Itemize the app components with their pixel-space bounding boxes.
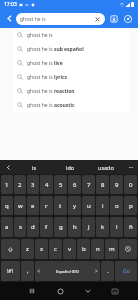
staticText: 17:03 xyxy=(4,1,17,8)
button[interactable]: , xyxy=(21,261,34,281)
button[interactable]: y xyxy=(68,196,81,215)
staticText: i xyxy=(102,202,104,210)
staticText: m xyxy=(109,245,115,253)
staticText: 8 xyxy=(101,181,105,189)
button[interactable]: z xyxy=(21,239,34,259)
button[interactable]: . xyxy=(101,261,114,281)
staticText: ghost he is lyrics xyxy=(27,74,68,81)
staticText: . xyxy=(107,267,109,275)
button[interactable]: t xyxy=(54,196,67,215)
button[interactable]: !#1 xyxy=(1,261,20,281)
button[interactable]: ghost he is lyrics xyxy=(13,70,129,84)
button[interactable]: usado xyxy=(88,160,124,174)
button[interactable]: 6 xyxy=(68,175,81,194)
button[interactable]: 8 xyxy=(96,175,109,194)
staticText: , xyxy=(27,267,29,275)
button[interactable]: Shift xyxy=(1,239,20,259)
staticText: b xyxy=(82,245,86,253)
staticText: p xyxy=(129,202,133,210)
staticText: 1 xyxy=(5,181,9,189)
button[interactable]: 9 xyxy=(110,175,123,194)
button[interactable]: Go xyxy=(115,261,137,281)
staticText: d xyxy=(31,223,35,231)
button[interactable]: n xyxy=(91,239,104,259)
staticText: ghost he is live xyxy=(27,60,63,67)
staticText: w xyxy=(18,202,23,210)
staticText: Español (ES) xyxy=(56,269,79,274)
button[interactable]: Back xyxy=(74,282,102,300)
button[interactable]: f xyxy=(40,217,53,237)
staticText: t xyxy=(59,202,62,210)
staticText: ñ xyxy=(129,223,133,231)
staticText: ghost he is sub español xyxy=(27,46,84,53)
button[interactable]: h xyxy=(68,217,81,237)
button[interactable]: Hide keyboard xyxy=(102,282,127,300)
button[interactable]: is xyxy=(16,160,52,174)
button[interactable]: Back xyxy=(3,12,16,25)
button[interactable]: b xyxy=(77,239,90,259)
staticText: is xyxy=(32,164,37,171)
staticText: k xyxy=(101,223,105,231)
button[interactable]: l xyxy=(110,217,123,237)
button[interactable]: 1 xyxy=(1,175,13,194)
button[interactable]: c xyxy=(49,239,62,259)
staticText: n xyxy=(96,245,100,253)
staticText: ghost he is xyxy=(27,32,53,39)
staticText: ghost he is acoustic xyxy=(27,102,75,109)
button[interactable]: Backspace xyxy=(119,239,137,259)
button[interactable]: ghost he is reaction xyxy=(13,84,129,98)
button[interactable]: q xyxy=(1,196,13,215)
button[interactable]: Download xyxy=(107,12,121,26)
staticText: s xyxy=(19,223,22,231)
staticText: o xyxy=(115,202,119,210)
button[interactable]: ghost he is acoustic xyxy=(13,98,129,112)
button[interactable]: 0 xyxy=(124,175,137,194)
button[interactable]: ñ xyxy=(124,217,137,237)
button[interactable]: 3 xyxy=(27,175,39,194)
staticText: 2 xyxy=(18,181,22,189)
button[interactable]: g xyxy=(54,217,67,237)
staticText: z xyxy=(26,245,29,253)
button[interactable]: s xyxy=(14,217,26,237)
button[interactable]: Previous xyxy=(0,160,16,174)
button[interactable]: k xyxy=(96,217,109,237)
button[interactable]: ido xyxy=(52,160,88,174)
button[interactable]: 4 xyxy=(40,175,53,194)
button[interactable]: p xyxy=(124,196,137,215)
button[interactable]: Recents xyxy=(18,282,46,300)
button[interactable]: v xyxy=(63,239,76,259)
staticText: ghost he is reaction xyxy=(27,88,75,95)
button[interactable]: j xyxy=(82,217,95,237)
button[interactable]: Space xyxy=(35,261,100,281)
button[interactable]: 7 xyxy=(82,175,95,194)
button[interactable]: d xyxy=(27,217,39,237)
button[interactable]: i xyxy=(96,196,109,215)
button[interactable]: o xyxy=(110,196,123,215)
staticText: !#1 xyxy=(7,268,14,274)
button[interactable]: More xyxy=(124,160,138,174)
button[interactable]: r xyxy=(40,196,53,215)
button[interactable]: m xyxy=(105,239,118,259)
button[interactable]: ghost he is xyxy=(16,13,105,25)
button[interactable]: x xyxy=(35,239,48,259)
staticText: v xyxy=(68,245,72,253)
button[interactable]: Home xyxy=(46,282,74,300)
button[interactable]: ghost he is sub español xyxy=(13,42,129,56)
staticText: 9 xyxy=(115,181,119,189)
button[interactable]: ghost he is live xyxy=(13,56,129,70)
button[interactable]: 2 xyxy=(14,175,26,194)
button[interactable]: e xyxy=(27,196,39,215)
button[interactable]: Account xyxy=(121,12,135,26)
button[interactable]: u xyxy=(82,196,95,215)
staticText: 4 xyxy=(45,181,49,189)
button[interactable]: a xyxy=(1,217,13,237)
button[interactable]: 5 xyxy=(54,175,67,194)
button[interactable]: Clear xyxy=(93,15,101,23)
button[interactable]: ghost he is xyxy=(13,28,129,42)
staticText: ··· xyxy=(129,164,134,171)
staticText: x xyxy=(40,245,44,253)
staticText: Go xyxy=(123,268,130,275)
button[interactable]: w xyxy=(14,196,26,215)
staticText: c xyxy=(54,245,57,253)
staticText: ido xyxy=(66,164,75,171)
